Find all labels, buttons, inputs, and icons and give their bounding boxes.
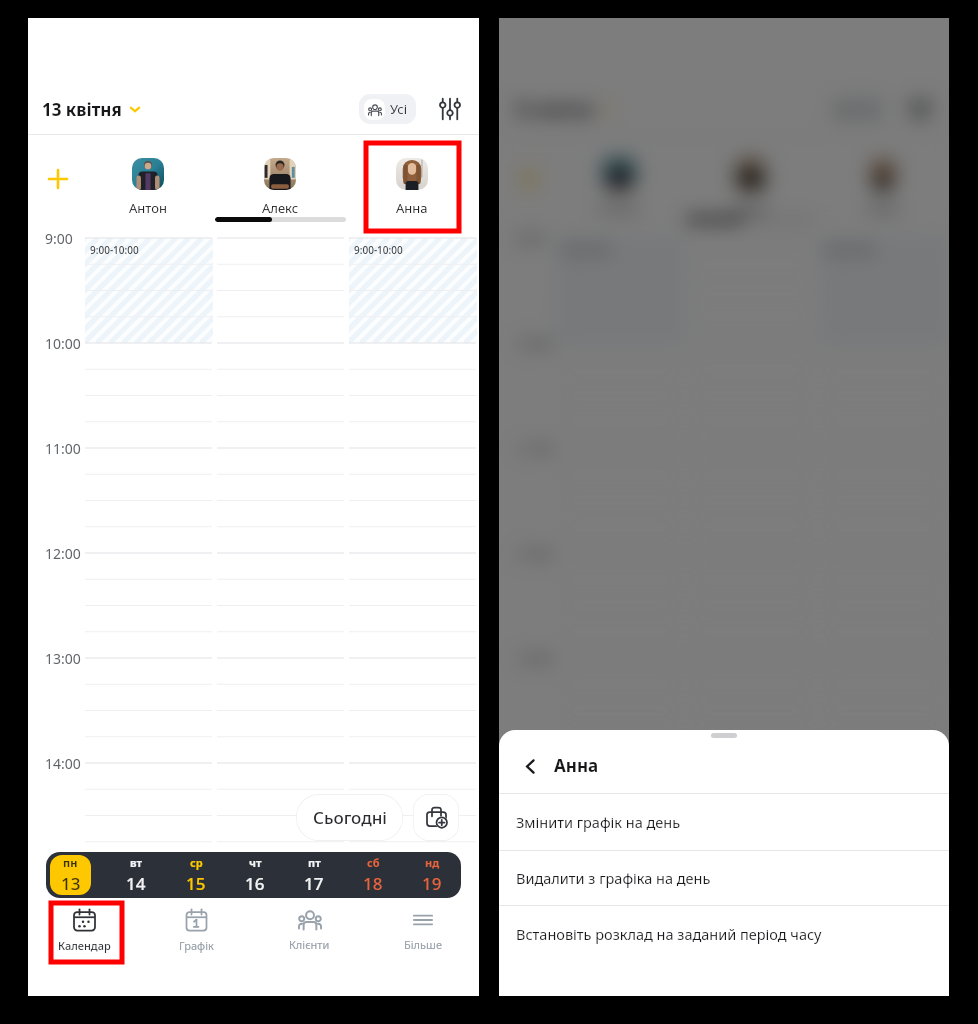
button[interactable]: Back bbox=[513, 749, 547, 783]
staticText: Сьогодні bbox=[313, 806, 387, 829]
button[interactable]: Add booking bbox=[413, 794, 459, 841]
button[interactable]: Add employee bbox=[46, 167, 70, 191]
button[interactable]: Антон bbox=[589, 135, 649, 231]
staticText: 13 квітня bbox=[513, 98, 593, 121]
staticText: 14:00 bbox=[45, 754, 81, 773]
staticText: пт bbox=[308, 855, 321, 870]
button[interactable]: Більше bbox=[836, 901, 949, 963]
staticText: 15 bbox=[656, 872, 676, 895]
staticText: Календар bbox=[58, 938, 111, 953]
staticText: 19 bbox=[422, 872, 442, 895]
staticText: Графік bbox=[179, 938, 214, 953]
button[interactable]: пн bbox=[521, 852, 562, 898]
button[interactable]: Антон bbox=[118, 135, 178, 231]
staticText: 13:00 bbox=[45, 649, 81, 668]
button[interactable]: Алекс bbox=[721, 135, 781, 231]
staticText: Змінити графік на день bbox=[516, 812, 681, 832]
button[interactable]: Встановіть розклад на заданий період час… bbox=[499, 906, 949, 961]
staticText: 18 bbox=[363, 872, 383, 895]
button[interactable]: сб bbox=[363, 852, 383, 898]
staticText: 14 bbox=[126, 872, 146, 895]
button[interactable]: 13 квітня bbox=[513, 83, 613, 135]
staticText: 12:00 bbox=[45, 544, 81, 563]
staticText: Календар bbox=[529, 938, 582, 953]
staticText: Усі bbox=[390, 100, 407, 118]
staticText: Видалити з графіка на день bbox=[516, 868, 711, 888]
button[interactable]: пн bbox=[50, 852, 91, 898]
staticText: 9:00-10:00 bbox=[90, 243, 139, 257]
button[interactable]: Календар bbox=[28, 901, 140, 963]
button[interactable]: Алекс bbox=[250, 135, 310, 231]
staticText: Алекс bbox=[733, 199, 770, 217]
staticText: Анна bbox=[396, 199, 428, 217]
staticText: вт bbox=[130, 855, 143, 870]
button[interactable]: ср bbox=[186, 852, 206, 898]
button[interactable]: Графік bbox=[611, 901, 723, 963]
staticText: нд bbox=[425, 855, 440, 870]
button[interactable]: Filters bbox=[905, 94, 935, 124]
staticText: Встановіть розклад на заданий період час… bbox=[516, 924, 822, 944]
button[interactable]: вт bbox=[597, 852, 617, 898]
button[interactable]: 13 квітня bbox=[42, 83, 142, 135]
staticText: 10:00 bbox=[45, 334, 81, 353]
button[interactable]: Календар bbox=[499, 901, 611, 963]
staticText: пн bbox=[63, 855, 78, 870]
button[interactable]: нд bbox=[422, 852, 442, 898]
button[interactable]: вт bbox=[126, 852, 146, 898]
button[interactable]: Графік bbox=[140, 901, 253, 963]
staticText: Анна bbox=[554, 754, 599, 777]
staticText: 14 bbox=[597, 872, 617, 895]
staticText: Алекс bbox=[262, 199, 299, 217]
button[interactable]: пт bbox=[304, 852, 324, 898]
button[interactable]: Більше bbox=[366, 901, 479, 963]
staticText: 17 bbox=[304, 872, 324, 895]
button[interactable]: Анна bbox=[382, 135, 442, 231]
staticText: Більше bbox=[404, 937, 442, 952]
button[interactable]: Змінити графік на день bbox=[499, 794, 949, 850]
staticText: 15 bbox=[186, 872, 206, 895]
button[interactable]: Filters bbox=[435, 94, 465, 124]
button[interactable]: чт bbox=[245, 852, 265, 898]
button[interactable]: ср bbox=[656, 852, 676, 898]
staticText: сб bbox=[367, 855, 380, 870]
button[interactable]: Видалити з графіка на день bbox=[499, 851, 949, 905]
button[interactable]: Усі bbox=[359, 94, 416, 124]
staticText: Клієнти bbox=[759, 937, 800, 952]
staticText: 11:00 bbox=[45, 439, 81, 458]
button[interactable]: Клієнти bbox=[723, 901, 836, 963]
staticText: 13 bbox=[61, 872, 81, 895]
button[interactable]: Сьогодні bbox=[296, 794, 403, 841]
button[interactable]: Клієнти bbox=[253, 901, 366, 963]
staticText: Клієнти bbox=[289, 937, 330, 952]
staticText: 9:00 bbox=[45, 229, 73, 248]
button[interactable]: Анна bbox=[853, 135, 913, 231]
staticText: 14:00 bbox=[516, 754, 552, 773]
